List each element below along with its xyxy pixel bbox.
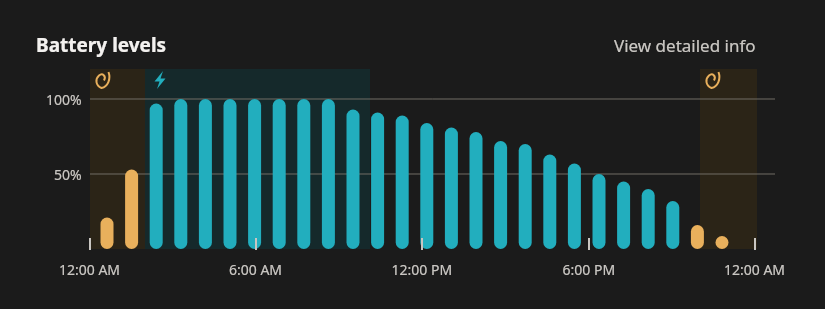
button[interactable]: View detailed info	[608, 28, 762, 63]
staticText: Battery levels	[36, 32, 167, 58]
staticText: View detailed info	[614, 34, 756, 57]
